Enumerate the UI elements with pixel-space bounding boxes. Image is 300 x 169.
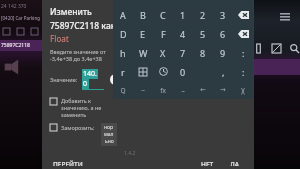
button[interactable]: fx <box>153 81 173 99</box>
button[interactable]: Заморозить: <box>50 123 95 131</box>
button[interactable]: 9 <box>213 43 233 62</box>
staticText: : <box>242 47 245 59</box>
button[interactable]: C <box>153 5 173 24</box>
staticText: C <box>160 9 166 21</box>
button[interactable]: Добавить к <box>50 97 102 118</box>
staticText: Добавить к <box>61 97 92 104</box>
staticText: НЕТ <box>201 160 214 166</box>
button[interactable]: ПЕРЕЙТИ <box>50 157 86 169</box>
other: Tool <box>272 44 281 53</box>
button[interactable]: : <box>233 62 253 81</box>
staticText: заменить <box>61 111 87 118</box>
staticText: 5 <box>200 28 206 40</box>
staticText: 7 <box>180 47 186 59</box>
staticText: значению, а не <box>61 104 102 111</box>
staticText: 75897C2118 как <box>50 20 116 32</box>
staticText: 140. <box>83 69 97 79</box>
button[interactable]: 5 <box>193 24 213 43</box>
staticText: Значение: <box>50 76 78 83</box>
staticText: [0420] Car Parking <box>1 15 41 21</box>
button[interactable]: , <box>213 62 233 81</box>
button[interactable]: 1 <box>173 5 193 24</box>
button[interactable]: : <box>233 43 253 62</box>
button[interactable]: Backspace <box>233 5 253 24</box>
staticText: A <box>120 9 126 21</box>
staticText: fx <box>160 86 166 95</box>
button[interactable]: W <box>133 43 153 62</box>
button[interactable]: Q <box>113 81 133 99</box>
button[interactable]: E <box>133 24 153 43</box>
button[interactable]: Показать варианты <box>110 74 121 85</box>
staticText: : <box>242 66 245 78</box>
staticText: -3,4e+38 до 3,4e+38 <box>50 55 102 62</box>
staticText: 24 142 370 <box>1 3 27 10</box>
staticText: Заморозить: <box>61 124 95 131</box>
button[interactable]: A <box>113 5 133 24</box>
staticText: X <box>160 47 166 59</box>
staticText: нор <box>104 124 114 131</box>
button[interactable]: 0 <box>173 62 193 81</box>
staticText: )( <box>241 86 245 95</box>
staticText: Float <box>50 33 69 44</box>
staticText: 9 <box>220 47 226 59</box>
staticText: Введите значение от <box>50 48 106 55</box>
staticText: ~ <box>141 86 145 95</box>
staticText: 0 <box>83 79 88 89</box>
button[interactable]: – <box>173 81 193 99</box>
other: Tool <box>254 44 263 53</box>
button[interactable]: 8 <box>193 43 213 62</box>
button[interactable]: → <box>213 81 233 99</box>
button[interactable]: Backspace <box>233 24 253 43</box>
staticText: ПЕРЕЙТИ <box>53 160 83 166</box>
button[interactable]: НЕТ <box>197 157 218 169</box>
button[interactable]: ДА <box>226 157 244 169</box>
staticText: → <box>220 86 226 94</box>
staticText: D <box>120 28 127 40</box>
button[interactable]: ← <box>193 81 213 99</box>
staticText: 2 <box>200 9 206 21</box>
button[interactable]: D <box>113 24 133 43</box>
staticText: F <box>161 28 166 40</box>
staticText: 8 <box>200 47 206 59</box>
staticText: h <box>120 47 126 59</box>
staticText: r <box>121 66 125 78</box>
staticText: B <box>140 9 146 21</box>
staticText: мал <box>104 131 114 138</box>
staticText: Q <box>120 86 126 95</box>
staticText: 75897C2118 <box>1 42 30 49</box>
staticText: – <box>181 86 185 95</box>
button[interactable]: B <box>133 5 153 24</box>
staticText: , <box>222 66 225 78</box>
staticText: E <box>140 28 146 40</box>
button[interactable]: )( <box>233 81 253 99</box>
button[interactable]: F <box>153 24 173 43</box>
staticText: ДА <box>230 160 240 166</box>
button[interactable]: 4 <box>173 24 193 43</box>
staticText: 6 <box>220 28 226 40</box>
button[interactable]: r <box>113 62 133 81</box>
button[interactable]: 2 <box>193 5 213 24</box>
other: Tool <box>290 44 299 53</box>
button[interactable]: 6 <box>213 24 233 43</box>
staticText: Изменить <box>50 6 92 18</box>
staticText: W <box>139 47 148 59</box>
button[interactable]: 7 <box>173 43 193 62</box>
staticText: 4 <box>180 28 186 40</box>
staticText: 0 <box>180 66 186 78</box>
staticText: ьно <box>105 138 114 145</box>
button[interactable]: ~ <box>133 81 153 99</box>
staticText: 3 <box>220 9 226 21</box>
button[interactable]: X <box>153 43 173 62</box>
button[interactable]: * <box>133 62 153 81</box>
button[interactable]: 3 <box>213 5 233 24</box>
staticText: 1.4.2 <box>124 150 136 157</box>
staticText: ← <box>200 86 206 94</box>
button[interactable]: h <box>113 43 133 62</box>
button[interactable]: @ <box>153 62 173 81</box>
button[interactable]: нор <box>101 123 117 146</box>
staticText: 1 <box>180 9 186 21</box>
